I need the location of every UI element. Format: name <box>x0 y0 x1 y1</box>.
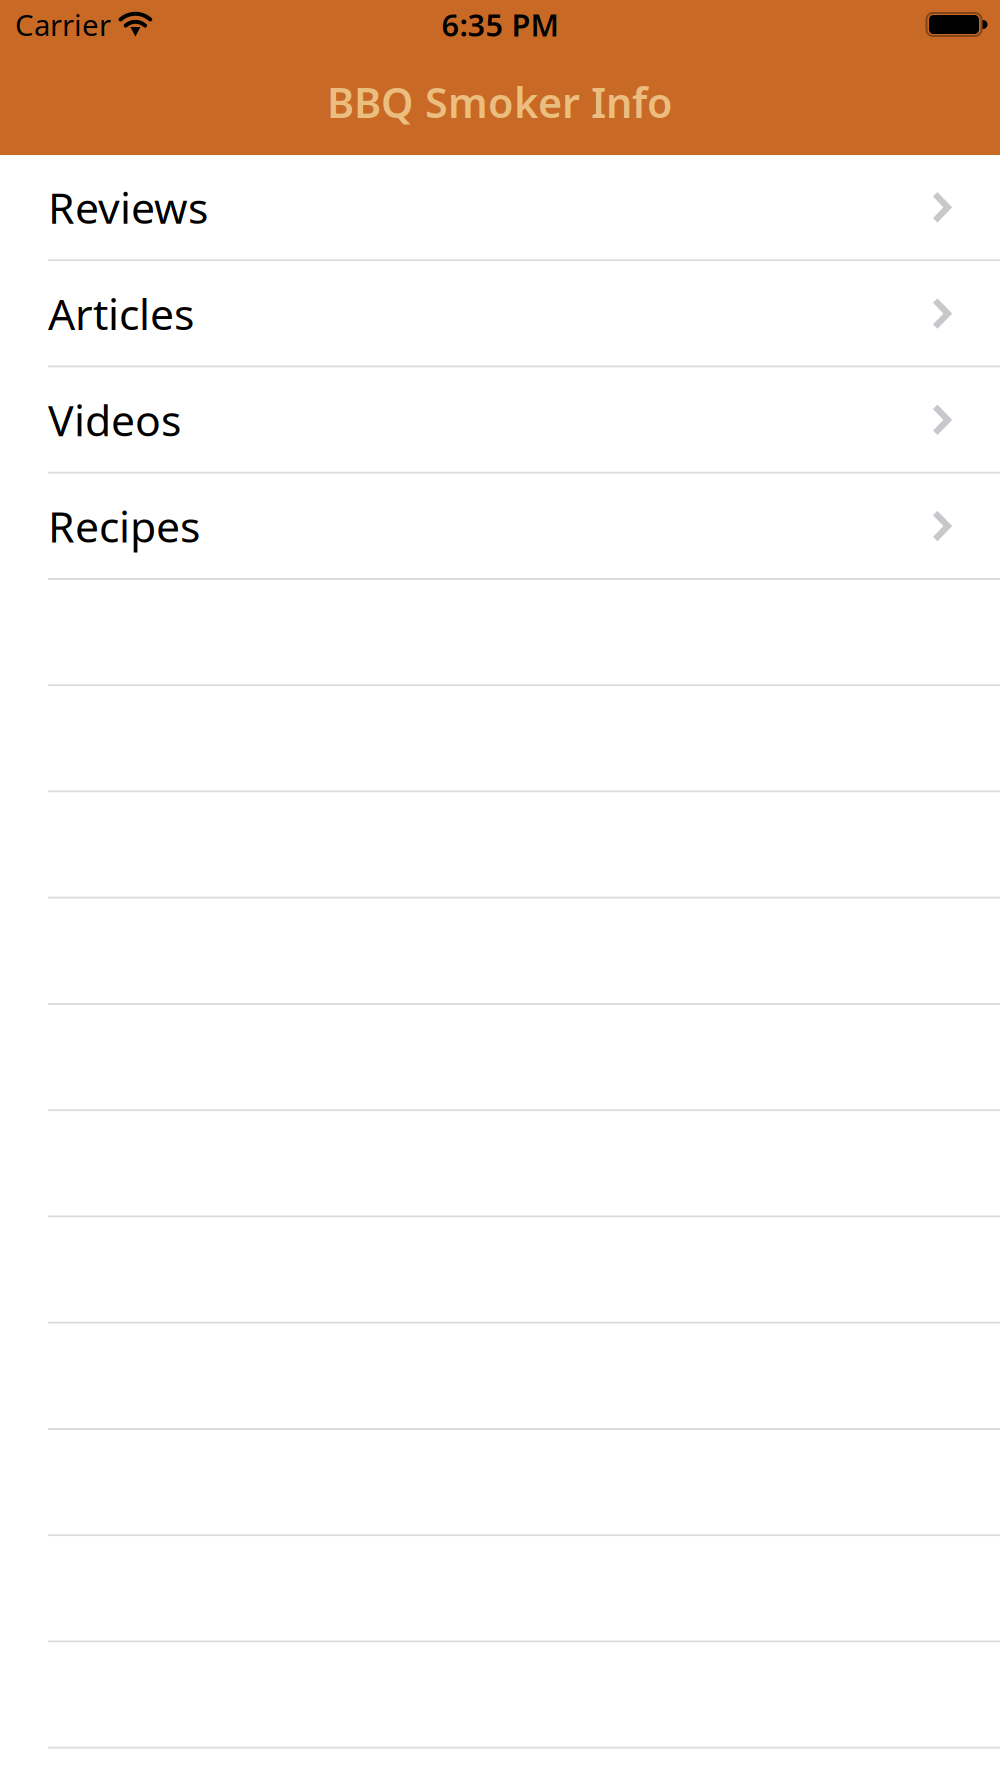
button[interactable]: Recipes <box>0 474 1000 580</box>
staticText: BBQ Smoker Info <box>327 75 673 129</box>
button[interactable]: Articles <box>0 261 1000 367</box>
staticText: Videos <box>48 391 181 448</box>
staticText: Reviews <box>48 179 208 235</box>
staticText: Carrier <box>15 5 111 44</box>
staticText: 6:35 PM <box>441 4 558 45</box>
staticText: Articles <box>48 285 194 342</box>
button[interactable]: Reviews <box>0 155 1000 261</box>
button[interactable]: Videos <box>0 367 1000 474</box>
staticText: Recipes <box>48 497 200 554</box>
